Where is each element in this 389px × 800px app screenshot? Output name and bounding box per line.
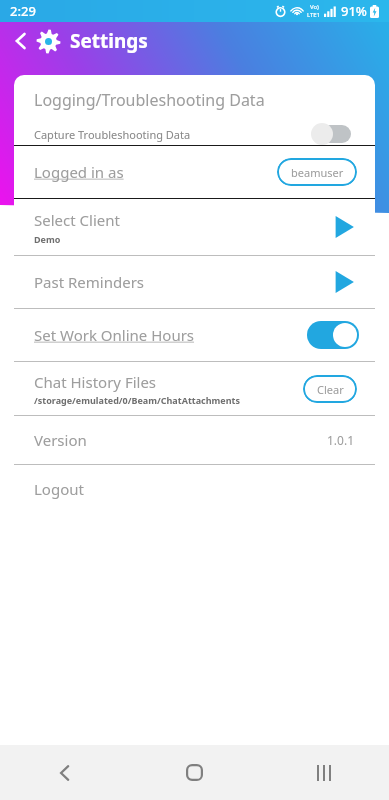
button[interactable]: Select Client [327,210,361,244]
button[interactable]: Home [129,745,259,800]
staticText: LTE1 [307,11,321,19]
button[interactable]: Set Work Online Hours toggle, on [307,321,359,349]
staticText: 91% [341,2,367,20]
staticText: 2:29 [10,2,36,20]
staticText: Version [34,430,87,450]
button[interactable]: Logging/Troubleshooting Data [14,75,375,145]
staticText: Select Client [34,210,120,230]
button[interactable]: Set Work Online Hours [14,309,375,361]
button[interactable]: Back [8,28,34,54]
staticText: Vo) [310,3,319,11]
button[interactable]: Version [14,416,375,464]
button[interactable]: Logout [14,465,375,513]
staticText: Settings [70,28,148,54]
staticText: Logged in as [34,162,124,182]
staticText: Logging/Troubleshooting Data [34,89,265,111]
staticText: Set Work Online Hours [34,325,195,345]
button[interactable]: Recent apps [259,745,389,800]
button[interactable]: Past Reminders [327,265,361,299]
button[interactable]: Logged in as [14,146,375,198]
staticText: Chat History Files [34,372,157,392]
button[interactable]: Past Reminders [14,256,375,308]
staticText: Demo [34,233,61,245]
staticText: Logout [34,479,84,499]
staticText: /storage/emulated/0/Beam/ChatAttachments [34,394,241,406]
button[interactable]: beamuser [277,158,357,186]
button[interactable]: Back [0,745,129,800]
staticText: Past Reminders [34,272,145,292]
staticText: Clear [317,382,344,397]
button[interactable]: Capture Troubleshooting Data toggle, off [311,123,357,145]
button[interactable]: Select Client [14,199,375,255]
button[interactable]: Clear [303,375,357,403]
staticText: Capture Troubleshooting Data [34,127,191,142]
button[interactable]: Chat History Files [14,362,375,415]
staticText: 1.0.1 [327,432,355,448]
staticText: beamuser [291,165,344,180]
